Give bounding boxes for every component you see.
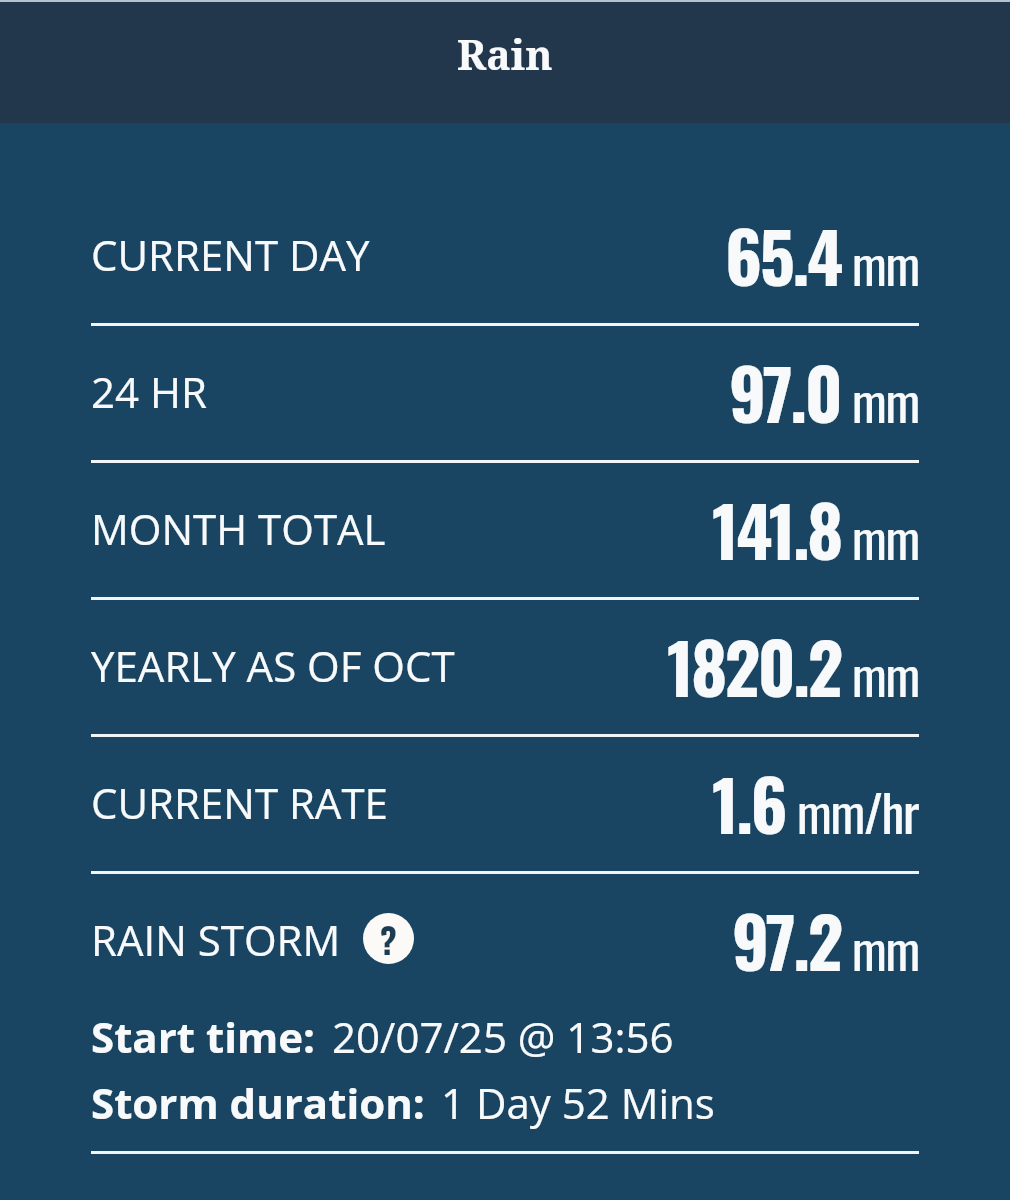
staticText: CURRENT RATE — [91, 774, 388, 831]
staticText: Start time: — [91, 1008, 316, 1065]
button[interactable]: YEARLY AS OF OCT — [91, 600, 919, 734]
staticText: 97.0 — [729, 341, 841, 443]
staticText: 141.8 — [712, 478, 841, 580]
button[interactable]: CURRENT DAY — [91, 189, 919, 323]
staticText: MONTH TOTAL — [91, 500, 386, 557]
button[interactable]: RAIN STORM — [91, 874, 919, 1008]
staticText: mm — [852, 225, 919, 301]
staticText: Storm duration: — [91, 1074, 425, 1131]
staticText: 1820.2 — [667, 615, 841, 717]
staticText: 20/07/25 @ 13:56 — [332, 1008, 674, 1065]
staticText: YEARLY AS OF OCT — [91, 637, 455, 694]
staticText: 1 Day 52 Mins — [441, 1074, 715, 1131]
staticText: mm — [852, 910, 919, 986]
staticText: mm — [852, 499, 919, 575]
staticText: Rain — [457, 26, 553, 82]
staticText: 24 HR — [91, 363, 207, 420]
button[interactable]: What is a rain storm? — [363, 913, 414, 964]
staticText: mm/hr — [797, 773, 919, 849]
staticText: RAIN STORM — [91, 911, 341, 968]
button[interactable]: 24 HR — [91, 326, 919, 460]
staticText: CURRENT DAY — [91, 226, 370, 283]
button[interactable]: MONTH TOTAL — [91, 463, 919, 597]
staticText: 1.6 — [712, 752, 786, 854]
staticText: ? — [380, 913, 397, 955]
staticText: 97.2 — [732, 889, 841, 991]
staticText: 65.4 — [725, 204, 841, 306]
staticText: mm — [852, 362, 919, 438]
staticText: mm — [852, 636, 919, 712]
button[interactable]: CURRENT RATE — [91, 737, 919, 871]
